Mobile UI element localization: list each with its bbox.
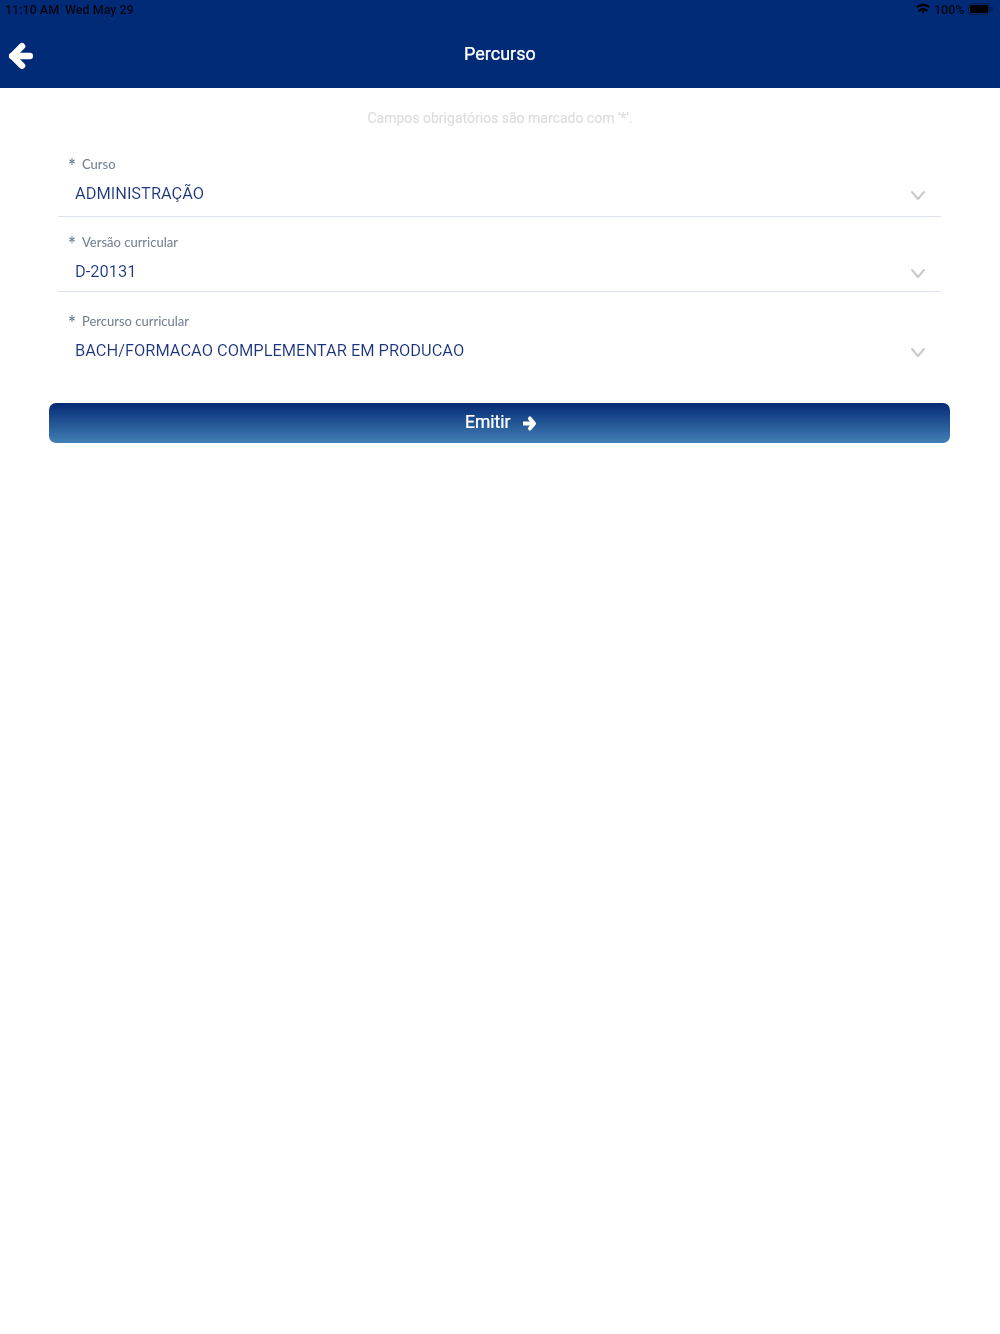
button[interactable]: Percurso curricular [0,307,1000,379]
staticText: D-20131 [75,262,137,281]
staticText: BACH/FORMACAO COMPLEMENTAR EM PRODUCAO [75,341,465,360]
button[interactable]: Versão curricular [0,228,1000,300]
staticText: Campos obrigatórios são marcado com '*'. [0,110,1000,126]
staticText: Wed May 29 [65,2,134,17]
staticText: Versão curricular [82,234,178,250]
staticText: 11:10 AM [5,2,60,17]
staticText: Emitir [465,412,511,433]
staticText: Curso [82,156,116,172]
staticText: 100% [934,2,965,17]
staticText: Percurso curricular [82,313,190,329]
staticText: Percurso [464,43,536,64]
button[interactable]: Back [0,28,48,83]
staticText: ADMINISTRAÇÃO [75,184,205,203]
button[interactable]: Emitir [49,403,950,443]
button[interactable]: Curso [0,150,1000,222]
